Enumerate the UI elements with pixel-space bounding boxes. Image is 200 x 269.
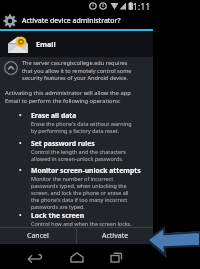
button[interactable]	[22, 244, 46, 269]
staticText: Email	[36, 39, 56, 49]
button[interactable]	[65, 244, 89, 269]
staticText: Activate device administrator?	[22, 16, 121, 26]
button[interactable]	[4, 61, 18, 75]
staticText: Control the length and the characters al…	[31, 148, 126, 162]
button[interactable]: Activate	[77, 228, 153, 244]
staticText: Monitor screen-unlock attempts	[31, 166, 141, 175]
button[interactable]: Email	[7, 31, 153, 57]
staticText: Set password rules	[31, 139, 95, 148]
staticText: Cancel	[27, 231, 49, 241]
staticText: •	[19, 139, 22, 149]
staticText: Lock the screen	[31, 211, 85, 220]
staticText: Erase the phone's data without warning b…	[31, 120, 132, 134]
staticText: •	[19, 111, 22, 121]
staticText: •	[19, 166, 22, 176]
staticText: Monitor the number of incorrect password…	[31, 175, 129, 210]
staticText: Control how and when the screen locks.	[31, 220, 132, 227]
button[interactable]	[105, 244, 129, 269]
button[interactable]: Cancel	[0, 228, 76, 244]
staticText: Activating this administrator will allow…	[5, 89, 131, 104]
staticText: Erase all data	[31, 111, 77, 120]
staticText: •	[19, 211, 22, 221]
staticText: The server cas.regiscollege.edu requires…	[22, 59, 132, 81]
staticText: 11:11	[128, 1, 151, 12]
staticText: Activate	[102, 231, 129, 241]
